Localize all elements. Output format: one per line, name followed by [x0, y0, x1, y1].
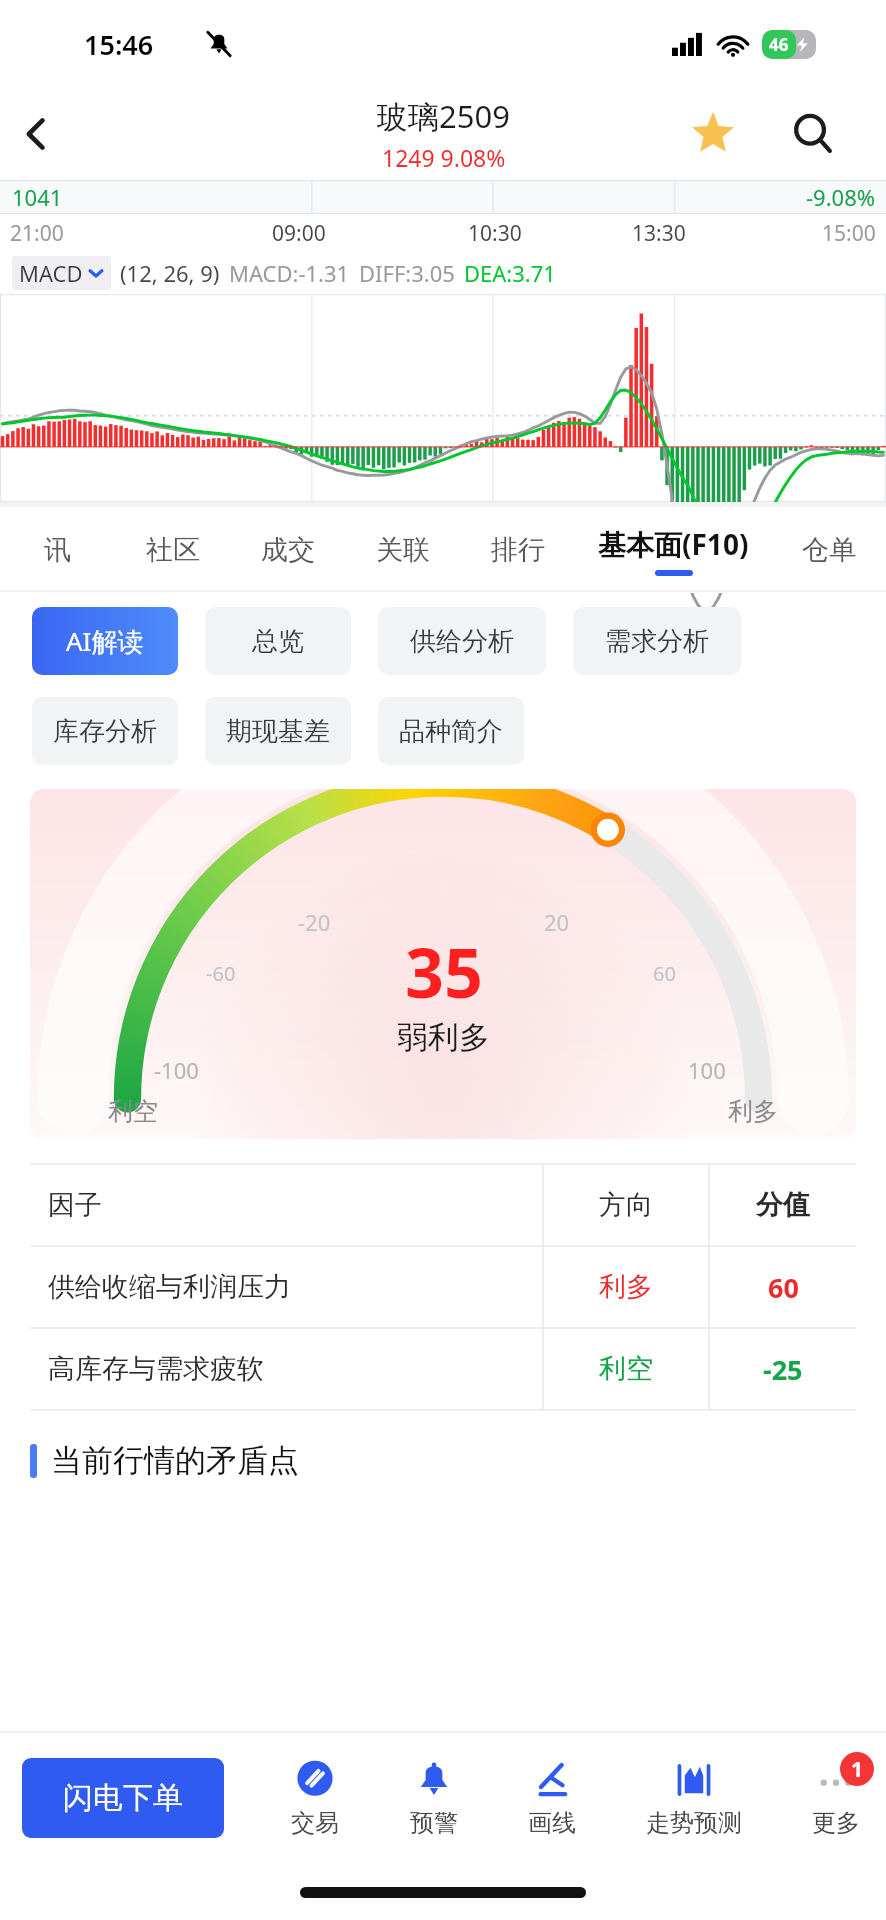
staticText: 利空: [108, 1096, 158, 1127]
button[interactable]: 预警: [406, 1758, 462, 1838]
button[interactable]: 走势预测: [642, 1758, 746, 1838]
staticText: 供给分析: [410, 625, 514, 658]
button[interactable]: Search: [780, 101, 846, 167]
staticText: 60: [653, 960, 676, 987]
staticText: 1: [851, 1755, 864, 1784]
staticText: 21:00: [10, 219, 64, 248]
staticText: 需求分析: [605, 625, 709, 658]
staticText: 更多: [812, 1808, 860, 1838]
button[interactable]: 总览: [205, 607, 351, 675]
staticText: 15:46: [84, 26, 154, 63]
staticText: 分值: [756, 1188, 810, 1222]
staticText: 15:00: [822, 219, 876, 248]
staticText: 利多: [728, 1096, 778, 1127]
button[interactable]: Back: [0, 98, 72, 170]
button[interactable]: 交易: [287, 1758, 343, 1838]
button[interactable]: AI解读: [32, 607, 178, 675]
button[interactable]: 画线: [524, 1758, 580, 1838]
staticText: 关联: [376, 533, 430, 567]
button[interactable]: 排行: [460, 507, 575, 593]
staticText: 画线: [528, 1808, 576, 1838]
staticText: 100: [688, 1055, 726, 1085]
button[interactable]: 仓单: [771, 507, 886, 593]
staticText: 20: [544, 907, 570, 937]
staticText: DEA:3.71: [464, 258, 556, 288]
staticText: 方向: [599, 1188, 653, 1222]
button[interactable]: 需求分析: [573, 607, 741, 675]
button[interactable]: 成交: [230, 507, 345, 593]
staticText: AI解读: [66, 623, 144, 659]
staticText: 因子: [48, 1188, 102, 1222]
button[interactable]: 关联: [345, 507, 460, 593]
staticText: -60: [206, 960, 236, 987]
staticText: (12, 26, 9): [120, 258, 220, 288]
staticText: 讯: [44, 533, 71, 567]
staticText: -20: [298, 907, 331, 937]
staticText: 品种简介: [399, 715, 503, 748]
staticText: 基本面(F10): [598, 525, 749, 563]
staticText: MACD:-1.31: [229, 258, 350, 288]
staticText: -9.08%: [806, 182, 876, 212]
staticText: 弱利多: [397, 1018, 490, 1057]
staticText: 期现基差: [226, 715, 330, 748]
staticText: 走势预测: [646, 1808, 742, 1838]
staticText: 闪电下单: [63, 1779, 183, 1817]
staticText: 10:30: [468, 219, 522, 248]
staticText: 总览: [252, 625, 304, 658]
button[interactable]: 社区: [115, 507, 230, 593]
button[interactable]: 期现基差: [205, 697, 351, 765]
button[interactable]: 库存分析: [32, 697, 178, 765]
button[interactable]: MACD: [12, 256, 111, 290]
button[interactable]: 品种简介: [378, 697, 524, 765]
staticText: DIFF:3.05: [359, 258, 455, 288]
button[interactable]: 更多: [808, 1758, 864, 1838]
staticText: 13:30: [632, 219, 686, 248]
staticText: -25: [763, 1351, 803, 1388]
staticText: 预警: [410, 1808, 458, 1838]
staticText: 1249 9.08%: [382, 142, 506, 173]
staticText: 当前行情的矛盾点: [51, 1441, 299, 1480]
button[interactable]: 闪电下单: [22, 1758, 224, 1838]
button[interactable]: 基本面(F10): [575, 507, 771, 593]
button[interactable]: Favorite: [680, 101, 746, 167]
staticText: MACD: [19, 258, 83, 288]
staticText: 46: [769, 33, 789, 56]
staticText: 成交: [261, 533, 315, 567]
staticText: 高库存与需求疲软: [48, 1352, 264, 1386]
staticText: 35: [405, 925, 483, 1018]
staticText: 玻璃2509: [377, 95, 510, 137]
staticText: 供给收缩与利润压力: [48, 1270, 291, 1304]
staticText: -100: [154, 1055, 199, 1085]
staticText: 交易: [291, 1808, 339, 1838]
staticText: 社区: [146, 533, 200, 567]
staticText: 利多: [599, 1270, 653, 1304]
staticText: 09:00: [272, 219, 326, 248]
staticText: 60: [768, 1269, 799, 1306]
staticText: 仓单: [802, 533, 856, 567]
button[interactable]: 讯: [0, 507, 115, 593]
staticText: 排行: [491, 533, 545, 567]
staticText: 1041: [12, 182, 63, 212]
button[interactable]: 供给分析: [378, 607, 546, 675]
staticText: 利空: [599, 1352, 653, 1386]
staticText: 库存分析: [53, 715, 157, 748]
